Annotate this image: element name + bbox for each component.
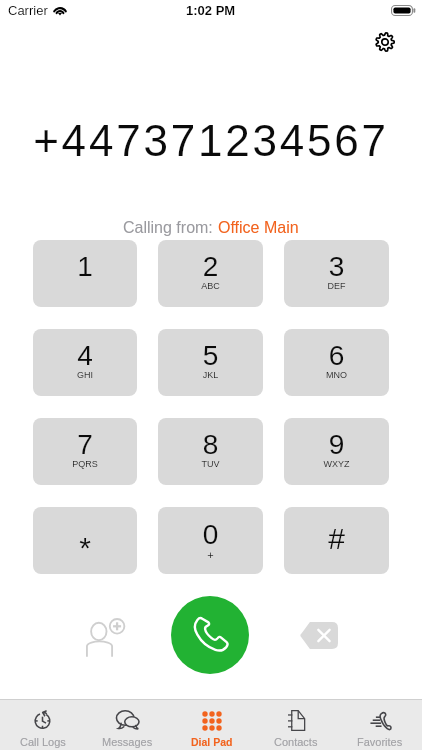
staticText: 5 — [158, 340, 263, 371]
staticText: ABC — [158, 281, 263, 291]
staticText: GHI — [33, 370, 137, 380]
staticText: Dial Pad — [191, 736, 233, 748]
staticText: TUV — [158, 459, 263, 469]
staticText: 6 — [284, 340, 389, 371]
staticText: Office Main — [218, 219, 299, 237]
staticText: Carrier — [8, 3, 48, 18]
button[interactable]: Call Logs — [0, 700, 85, 750]
button[interactable]: Settings — [371, 28, 399, 56]
button[interactable]: Backspace — [292, 610, 344, 654]
staticText: 7 — [33, 429, 137, 460]
button[interactable]: 1 — [33, 240, 137, 307]
staticText: + — [158, 549, 263, 561]
button[interactable]: 3 — [284, 240, 389, 307]
staticText: 4 — [33, 340, 137, 371]
staticText: Messages — [102, 736, 153, 748]
staticText: Contacts — [274, 736, 318, 748]
staticText: Call Logs — [20, 736, 66, 748]
staticText: 9 — [284, 429, 389, 460]
staticText: 1 — [33, 251, 137, 282]
button[interactable]: Favorites — [338, 700, 422, 750]
staticText: Favorites — [357, 736, 403, 748]
button[interactable]: 8 — [158, 418, 263, 485]
button[interactable]: * — [33, 507, 137, 574]
button[interactable]: 0 — [158, 507, 263, 574]
button[interactable]: 2 — [158, 240, 263, 307]
button[interactable]: 7 — [33, 418, 137, 485]
staticText: 1:02 PM — [186, 3, 236, 18]
staticText: DEF — [284, 281, 389, 291]
button[interactable]: 4 — [33, 329, 137, 396]
staticText: 2 — [158, 251, 263, 282]
staticText: # — [284, 522, 389, 556]
button[interactable]: Call — [171, 596, 249, 674]
staticText: 0 — [158, 519, 263, 550]
staticText: MNO — [284, 370, 389, 380]
button[interactable]: # — [284, 507, 389, 574]
button[interactable]: Dial Pad — [170, 700, 254, 750]
staticText: 8 — [158, 429, 263, 460]
staticText: Calling from: — [123, 219, 218, 237]
button[interactable]: 5 — [158, 329, 263, 396]
staticText: WXYZ — [284, 459, 389, 469]
button[interactable]: Contacts — [254, 700, 338, 750]
button[interactable]: 6 — [284, 329, 389, 396]
staticText: +447371234567 — [0, 116, 422, 165]
staticText: 3 — [284, 251, 389, 282]
button[interactable]: Add contact — [86, 610, 130, 654]
button[interactable]: Messages — [85, 700, 170, 750]
staticText: * — [33, 531, 137, 565]
button[interactable]: 9 — [284, 418, 389, 485]
staticText: JKL — [158, 370, 263, 380]
staticText: PQRS — [33, 459, 137, 469]
